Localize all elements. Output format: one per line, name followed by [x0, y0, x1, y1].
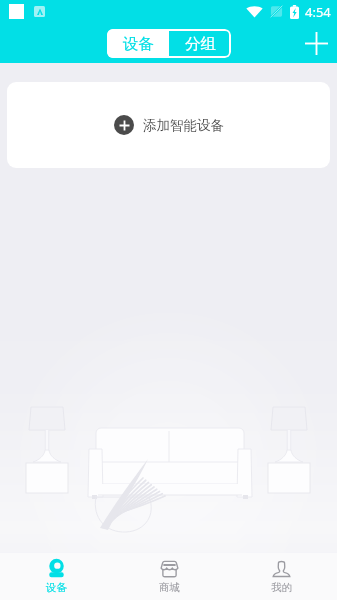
button[interactable]: 添加智能设备: [7, 82, 330, 168]
button[interactable]: 我的: [225, 553, 337, 600]
staticText: 设备: [123, 34, 154, 54]
staticText: 商城: [159, 581, 180, 594]
button[interactable]: 设备: [107, 29, 169, 58]
button[interactable]: 设备: [0, 553, 113, 600]
staticText: 4:54: [305, 3, 331, 21]
button[interactable]: 分组: [169, 29, 231, 58]
staticText: 添加智能设备: [143, 117, 224, 134]
button[interactable]: 商城: [113, 553, 225, 600]
staticText: 设备: [46, 581, 67, 594]
staticText: 我的: [271, 581, 292, 594]
button[interactable]: Add device: [296, 23, 337, 63]
staticText: 分组: [185, 34, 216, 54]
